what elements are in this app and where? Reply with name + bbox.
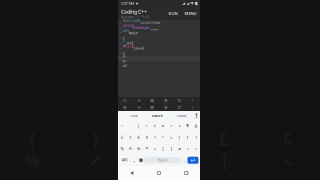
button[interactable]: \ xyxy=(192,131,200,143)
staticText: { xyxy=(122,51,124,56)
button[interactable]: ° xyxy=(159,131,167,143)
staticText: int xyxy=(122,28,129,37)
button[interactable]: ¥ xyxy=(143,131,151,143)
button[interactable]: Recent apps xyxy=(173,166,200,180)
staticText: \ xyxy=(157,127,163,150)
button[interactable]: | xyxy=(134,120,143,131)
button[interactable]: ¢ xyxy=(126,131,134,143)
staticText: ® xyxy=(137,146,140,151)
button[interactable]: © xyxy=(126,143,134,154)
staticText: √ xyxy=(153,123,156,128)
staticText: • xyxy=(146,123,148,128)
button[interactable]: ≠ xyxy=(175,143,184,154)
button[interactable]: Back xyxy=(118,166,145,180)
button[interactable]: MENU xyxy=(183,9,198,18)
button[interactable]: ¶ xyxy=(184,120,192,131)
staticText: namespace xyxy=(133,21,151,35)
button[interactable]: ÷ xyxy=(167,120,175,131)
staticText: ™ xyxy=(145,146,148,151)
staticText: Autosaved 8:19:44 xyxy=(121,15,149,19)
button[interactable]: court xyxy=(146,113,169,118)
staticText: 7:07 PM xyxy=(120,1,134,6)
button[interactable]: Editor tool 3 xyxy=(145,97,159,104)
button[interactable]: Editor tool 9 xyxy=(145,104,159,111)
button[interactable]: √ xyxy=(151,120,159,131)
button[interactable]: cout xyxy=(122,113,146,118)
button[interactable]: , xyxy=(130,154,137,166)
button[interactable]: Editor tool 10 xyxy=(159,104,173,111)
button[interactable]: Editor tool 5 xyxy=(173,97,186,104)
button[interactable]: ] xyxy=(167,143,175,154)
staticText: [ xyxy=(163,146,164,151)
staticText: cout xyxy=(122,54,127,68)
button[interactable]: Voice input xyxy=(193,113,200,118)
button[interactable]: } xyxy=(184,131,192,143)
staticText: = xyxy=(170,135,172,140)
staticText: cout xyxy=(130,113,137,118)
button[interactable]: Editor tool 8 xyxy=(132,104,145,111)
button[interactable]: . xyxy=(180,154,187,166)
button[interactable]: Editor tool 12 xyxy=(186,104,200,111)
staticText: > xyxy=(195,146,197,151)
button[interactable]: Editor tool 4 xyxy=(159,97,173,104)
button[interactable]: Editor tool 7 xyxy=(118,104,132,111)
staticText: ABC xyxy=(122,158,128,162)
staticText: 3 xyxy=(119,31,121,34)
staticText: ~ xyxy=(121,123,123,128)
button[interactable]: [ xyxy=(159,143,167,154)
button[interactable]: ® xyxy=(134,143,143,154)
staticText: { xyxy=(122,36,124,40)
staticText: × xyxy=(178,123,180,128)
staticText: ¢ xyxy=(283,127,293,150)
staticText: (n<=25) xyxy=(133,41,144,55)
button[interactable]: Switch language xyxy=(137,154,144,166)
staticText: { xyxy=(178,135,180,140)
button[interactable]: ™ xyxy=(143,143,151,154)
button[interactable]: ABC xyxy=(119,154,130,166)
button[interactable]: Editor tool 1 xyxy=(118,97,132,104)
staticText: n=1; xyxy=(127,36,133,50)
staticText: 7 xyxy=(119,52,121,55)
staticText: £ xyxy=(121,135,123,140)
button[interactable]: € xyxy=(134,131,143,143)
button[interactable]: ∆ xyxy=(192,120,200,131)
button[interactable]: count xyxy=(169,113,193,118)
button[interactable]: { xyxy=(175,131,184,143)
button[interactable]: ✓ xyxy=(151,143,159,154)
staticText: } xyxy=(187,135,189,140)
staticText: % xyxy=(121,146,124,151)
button[interactable]: Editor tool 2 xyxy=(132,97,145,104)
button[interactable]: > xyxy=(192,143,200,154)
staticText: English xyxy=(157,158,167,162)
button[interactable]: • xyxy=(143,120,151,131)
button[interactable]: Enter xyxy=(187,157,198,164)
button[interactable]: × xyxy=(175,120,184,131)
button[interactable]: Editor tool 11 xyxy=(173,104,186,111)
staticText: ✓ xyxy=(153,146,156,151)
button[interactable]: < xyxy=(184,143,192,154)
staticText: © xyxy=(129,146,132,151)
button[interactable]: = xyxy=(167,131,175,143)
button[interactable]: π xyxy=(159,120,167,131)
button[interactable]: English xyxy=(144,157,180,163)
button[interactable]: RUN xyxy=(167,9,179,18)
staticText: MENU xyxy=(184,11,196,16)
staticText: court xyxy=(152,113,163,118)
staticText: 6 xyxy=(119,47,121,50)
staticText: main() xyxy=(129,26,137,40)
staticText: int xyxy=(122,38,127,48)
button[interactable]: Editor tool 6 xyxy=(186,97,200,104)
button[interactable]: £ xyxy=(118,131,126,143)
staticText: ÷ xyxy=(170,123,172,128)
button[interactable]: % xyxy=(118,143,126,154)
staticText: £ xyxy=(219,127,229,150)
staticText: \ xyxy=(195,135,196,140)
button[interactable]: ~ xyxy=(118,120,126,131)
button[interactable]: Home xyxy=(145,166,173,180)
staticText: ¶ xyxy=(186,123,189,128)
staticText: ∆ xyxy=(194,123,197,128)
button[interactable]: ^ xyxy=(151,131,159,143)
staticText: ¢ xyxy=(129,135,131,140)
